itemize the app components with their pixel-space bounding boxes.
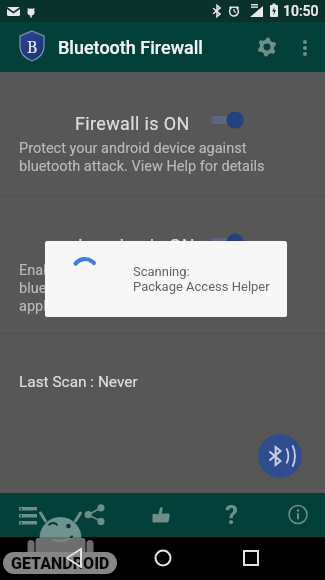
button[interactable]: Help xyxy=(212,497,246,531)
staticText: Last Scan : Never xyxy=(19,373,138,391)
button[interactable]: About xyxy=(281,497,315,531)
button[interactable]: Recents xyxy=(234,541,268,575)
staticText: 10:50 xyxy=(283,3,319,19)
staticText: Scanning: Package Access Helper xyxy=(133,264,270,294)
staticText: Firewall is ON xyxy=(75,113,190,134)
staticText: B xyxy=(27,36,38,58)
staticText: Bluetooth Firewall xyxy=(58,37,203,58)
button[interactable]: Back xyxy=(56,541,90,575)
button[interactable]: Scan bluetooth devices xyxy=(258,434,302,478)
staticText: GETANDROID xyxy=(11,554,110,573)
button[interactable]: Rate app xyxy=(144,497,178,531)
button[interactable] xyxy=(211,108,249,132)
staticText: Enable logging to record all bluetooth a… xyxy=(19,262,194,315)
staticText: ? xyxy=(225,500,238,530)
button[interactable]: Share xyxy=(78,497,112,531)
button[interactable]: More options xyxy=(293,33,317,57)
button[interactable]: Home xyxy=(146,541,180,575)
staticText: Protect your android device against blue… xyxy=(19,140,265,174)
button[interactable]: Apps list xyxy=(11,497,45,531)
button[interactable]: Settings xyxy=(253,33,281,61)
staticText: Logging is ON xyxy=(78,235,195,256)
button[interactable] xyxy=(211,230,249,254)
